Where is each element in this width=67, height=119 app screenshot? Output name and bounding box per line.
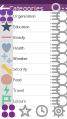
button[interactable]: Security — [0, 64, 67, 75]
button[interactable]: Organization — [0, 11, 67, 22]
staticText: Education — [13, 24, 29, 29]
button[interactable]: Weather — [0, 53, 67, 64]
staticText: Health — [13, 45, 24, 50]
button[interactable]: Travel — [0, 85, 67, 96]
staticText: Security — [13, 66, 27, 72]
staticText: Weather — [13, 56, 28, 61]
button[interactable]: Recent — [33, 109, 50, 117]
staticText: Leisure — [13, 98, 26, 103]
button[interactable]: Categories — [0, 109, 17, 117]
button[interactable]: Beauty — [0, 32, 67, 43]
button[interactable]: Favorites — [17, 109, 34, 117]
staticText: Beauty — [13, 35, 25, 40]
button[interactable]: Search — [55, 6, 59, 10]
button[interactable]: Food — [0, 75, 67, 85]
staticText: Categories — [9, 4, 43, 13]
staticText: Travel — [13, 88, 24, 93]
staticText: Food — [13, 77, 21, 82]
staticText: Favorites — [20, 114, 31, 117]
button[interactable]: Settings — [50, 109, 67, 117]
button[interactable]: Back — [2, 6, 7, 11]
staticText: Settings — [53, 114, 64, 117]
button[interactable]: Education — [0, 22, 67, 32]
button[interactable]: More — [61, 6, 65, 10]
button[interactable]: Health — [0, 43, 67, 53]
button[interactable]: Leisure — [0, 96, 67, 106]
staticText: Categories — [1, 114, 16, 117]
staticText: Recent — [37, 114, 47, 117]
staticText: Organization — [13, 13, 35, 19]
